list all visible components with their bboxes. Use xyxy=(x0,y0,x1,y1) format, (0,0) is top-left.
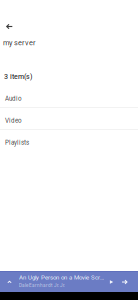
button[interactable]: Next track xyxy=(118,272,131,292)
staticText: Video xyxy=(5,117,22,124)
staticText: An Ugly Person on a Movie Scr… xyxy=(19,274,104,281)
button[interactable]: Back xyxy=(0,23,24,29)
staticText: Audio xyxy=(5,95,22,102)
button[interactable]: Video xyxy=(0,108,138,130)
staticText: 3 item(s) xyxy=(4,72,32,81)
staticText: my server xyxy=(3,38,35,47)
staticText: Playlists xyxy=(5,139,29,146)
button[interactable]: Playlists xyxy=(0,130,138,152)
button[interactable]: Play xyxy=(105,272,118,292)
button[interactable]: Expand now playing xyxy=(0,272,19,292)
staticText: Dale Earnhardt Jr. Jr. xyxy=(19,283,65,288)
button[interactable]: Audio xyxy=(0,86,138,108)
